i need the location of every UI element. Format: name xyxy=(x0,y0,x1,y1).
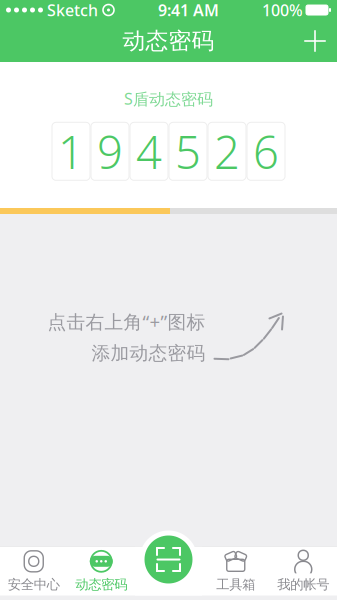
staticText: 100% xyxy=(262,0,303,21)
staticText: 点击右上角“+”图标 xyxy=(47,309,205,334)
button[interactable]: Scan xyxy=(139,530,197,588)
button[interactable]: Add dynamic password xyxy=(293,20,337,62)
staticText: 动态密码 xyxy=(75,576,127,593)
staticText: 2 xyxy=(214,121,240,181)
staticText: 4 xyxy=(136,121,162,181)
button[interactable]: 安全中心 xyxy=(0,546,67,595)
staticText: 我的帐号 xyxy=(277,576,329,593)
staticText: S盾动态密码 xyxy=(124,88,213,109)
staticText: 添加动态密码 xyxy=(91,342,205,365)
staticText: 9:41 AM xyxy=(158,0,219,21)
staticText: 5 xyxy=(175,121,201,181)
staticText: 1 xyxy=(58,121,84,181)
staticText: 安全中心 xyxy=(8,576,60,593)
staticText: 6 xyxy=(253,121,279,181)
button[interactable]: 我的帐号 xyxy=(269,546,337,595)
button[interactable]: 动态密码 xyxy=(67,546,135,595)
staticText: 动态密码 xyxy=(122,27,214,55)
button[interactable]: 工具箱 xyxy=(202,546,269,595)
staticText: 工具箱 xyxy=(216,576,255,593)
staticText: 9 xyxy=(97,121,123,181)
staticText: Sketch xyxy=(47,0,98,21)
